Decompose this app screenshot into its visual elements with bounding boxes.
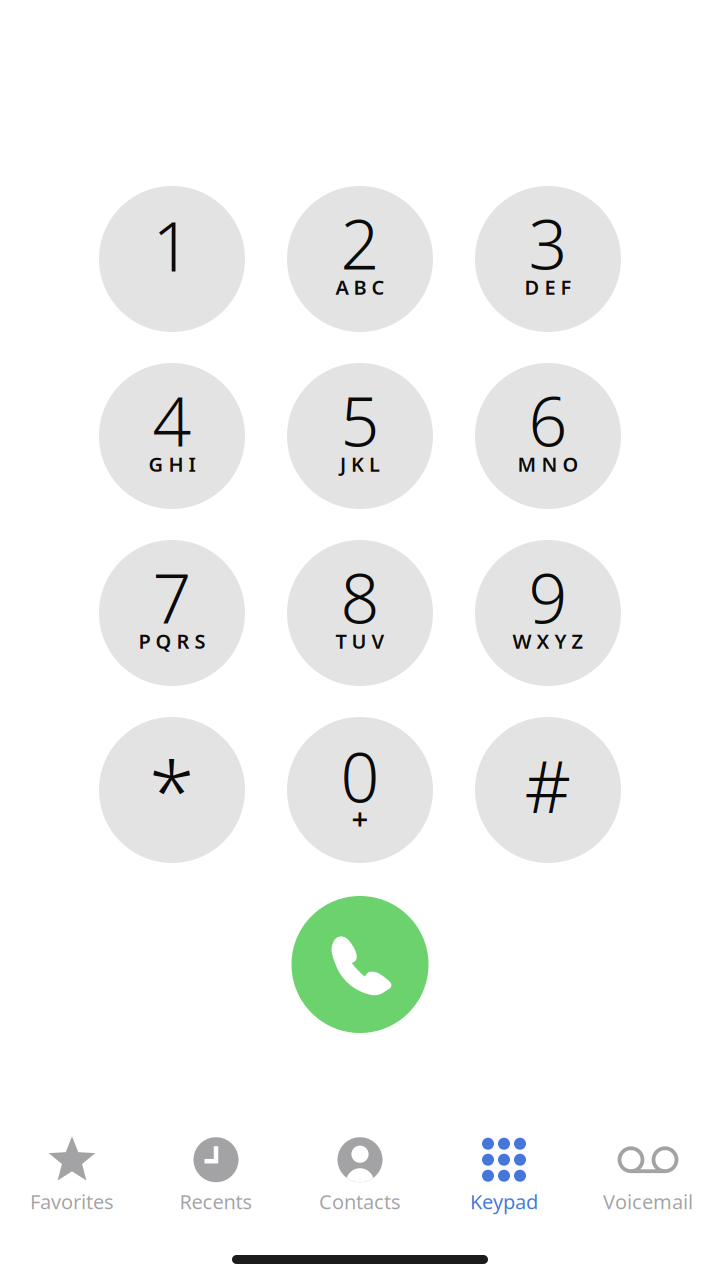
- staticText: +: [351, 798, 368, 837]
- staticText: Keypad: [470, 1188, 538, 1215]
- button[interactable]: 9: [475, 540, 621, 686]
- staticText: Contacts: [319, 1188, 401, 1215]
- staticText: J K L: [340, 451, 380, 477]
- button[interactable]: 7: [99, 540, 245, 686]
- button[interactable]: Contacts: [288, 1137, 432, 1215]
- staticText: Voicemail: [603, 1188, 693, 1215]
- staticText: M N O: [517, 451, 578, 477]
- button[interactable]: Keypad: [432, 1137, 576, 1215]
- staticText: 4: [152, 375, 191, 465]
- staticText: *: [149, 735, 195, 845]
- button[interactable]: Favorites: [0, 1137, 144, 1215]
- staticText: 9: [528, 552, 567, 642]
- button[interactable]: 5: [287, 363, 433, 509]
- button[interactable]: 2: [287, 186, 433, 332]
- button[interactable]: 3: [475, 186, 621, 332]
- button[interactable]: 0: [287, 717, 433, 863]
- button[interactable]: 1: [99, 186, 245, 332]
- staticText: 2: [340, 198, 379, 288]
- staticText: D E F: [524, 274, 571, 300]
- staticText: 5: [340, 375, 379, 465]
- staticText: #: [524, 737, 571, 833]
- button[interactable]: 6: [475, 363, 621, 509]
- button[interactable]: Recents: [144, 1137, 288, 1215]
- staticText: 0: [340, 731, 379, 821]
- button[interactable]: 8: [287, 540, 433, 686]
- button[interactable]: *: [99, 717, 245, 863]
- staticText: Favorites: [30, 1188, 114, 1215]
- button[interactable]: #: [475, 717, 621, 863]
- staticText: 3: [528, 198, 567, 288]
- staticText: 8: [340, 552, 379, 642]
- button[interactable]: 4: [99, 363, 245, 509]
- staticText: W X Y Z: [512, 628, 583, 654]
- staticText: T U V: [335, 628, 384, 654]
- staticText: 7: [152, 552, 191, 642]
- staticText: Recents: [179, 1188, 252, 1215]
- staticText: 1: [152, 200, 191, 290]
- staticText: 6: [528, 375, 567, 465]
- staticText: P Q R S: [138, 628, 205, 654]
- button[interactable]: Voicemail: [576, 1137, 720, 1215]
- button[interactable]: Call: [291, 896, 428, 1033]
- staticText: A B C: [335, 274, 384, 300]
- staticText: G H I: [148, 451, 195, 477]
